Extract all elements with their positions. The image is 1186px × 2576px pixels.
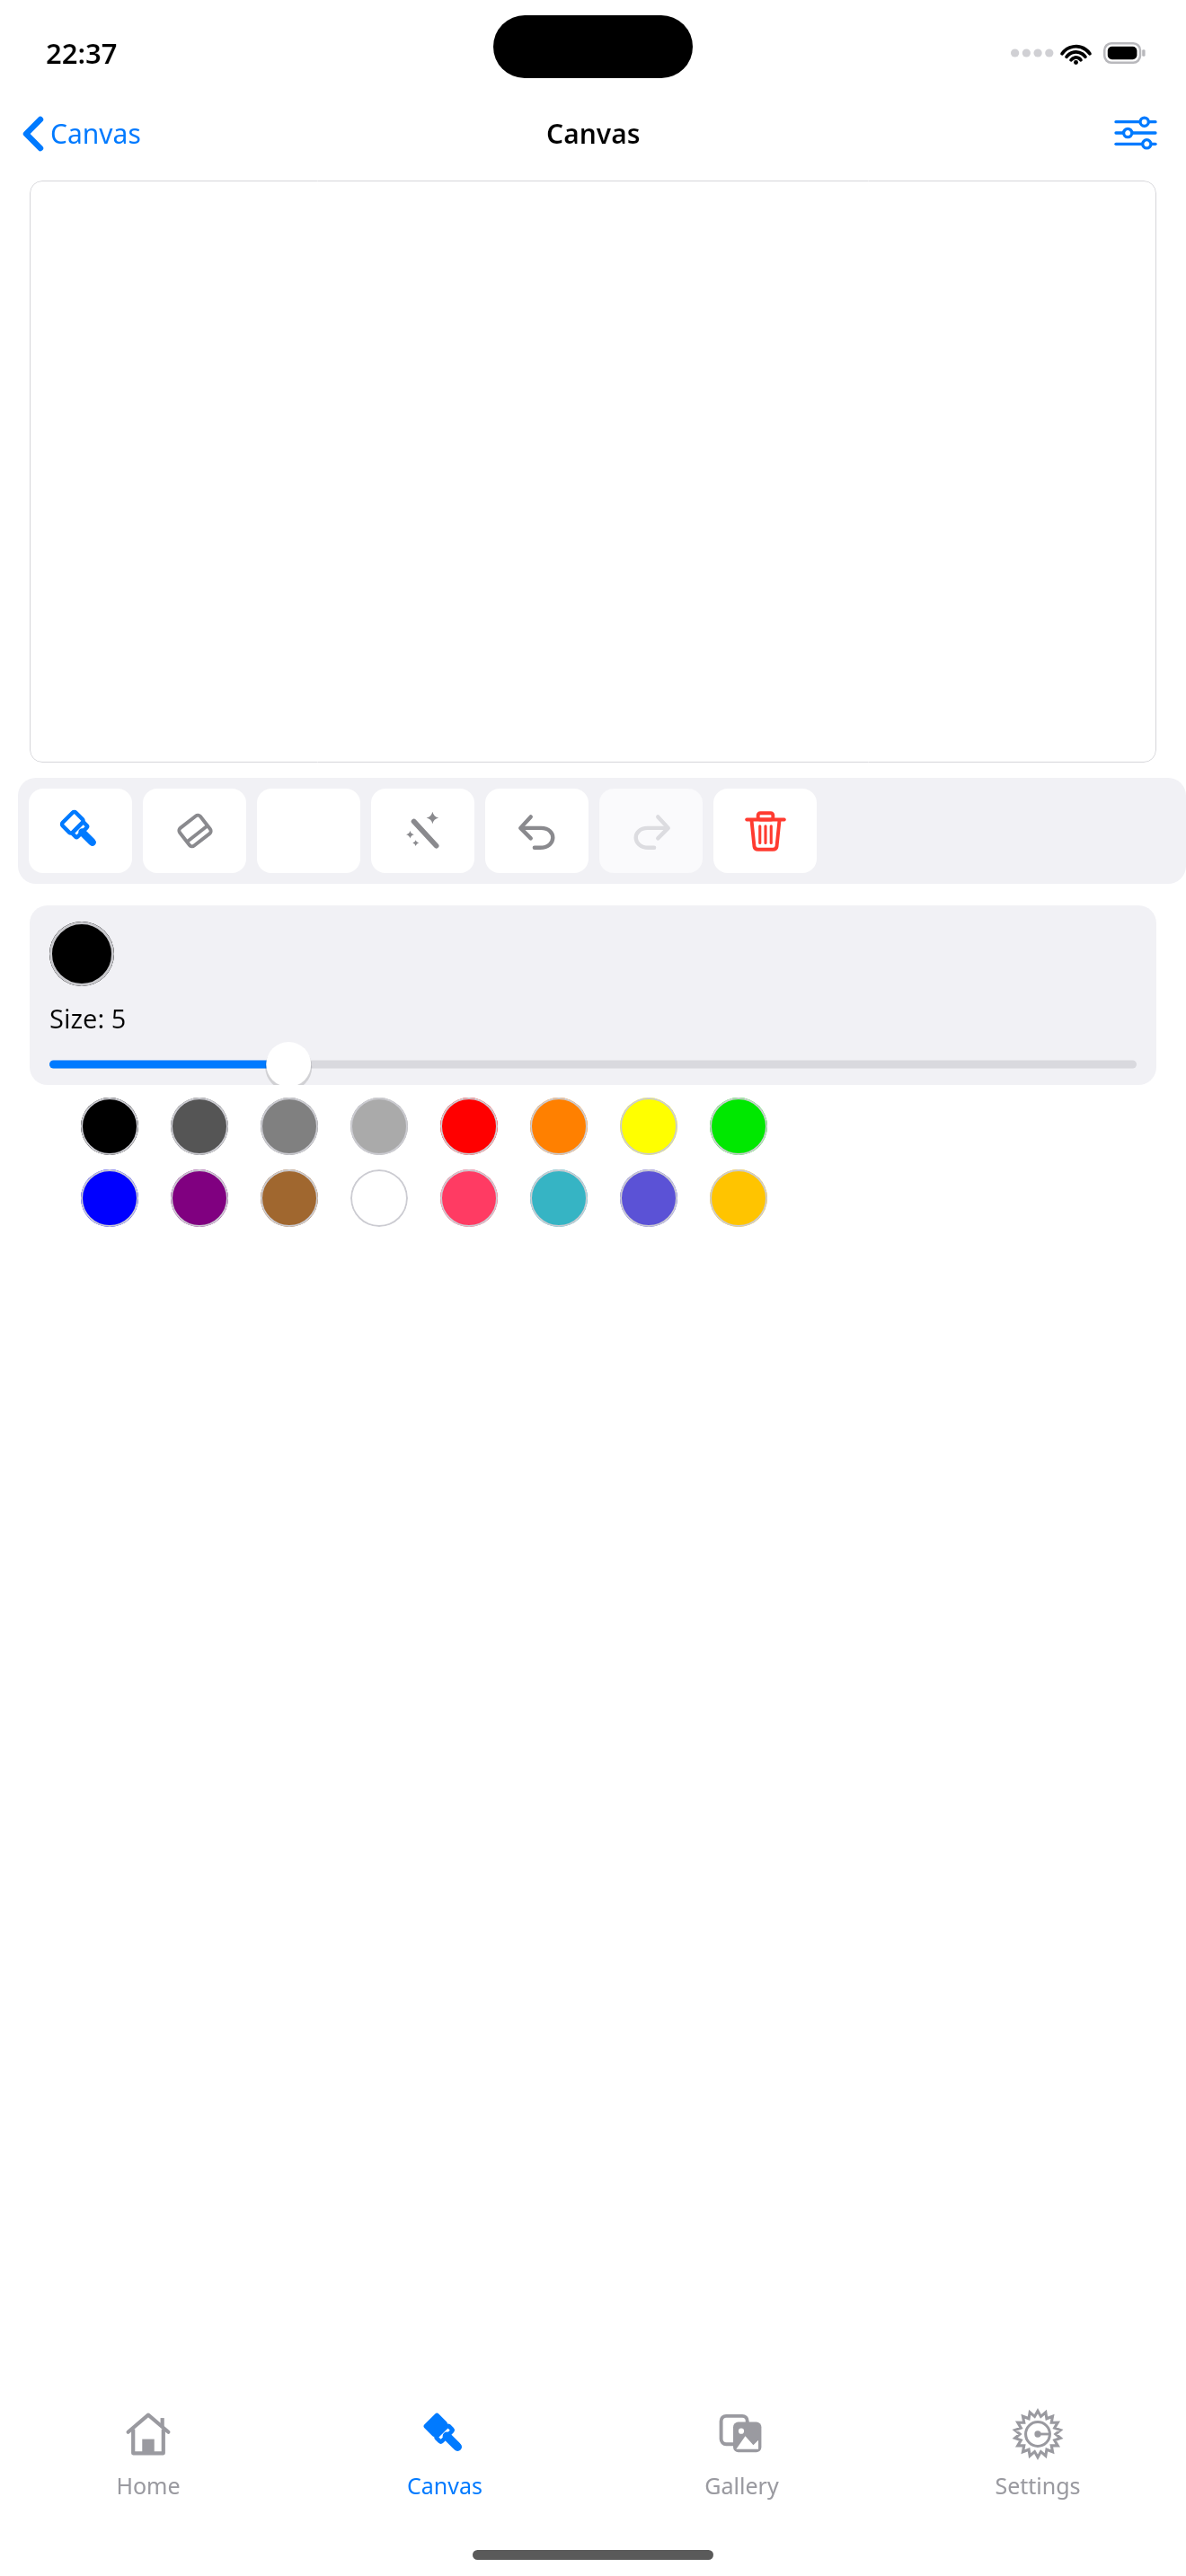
button[interactable]: Color swatch [81,1169,138,1227]
button[interactable]: Color swatch [171,1098,228,1155]
staticText: Canvas [407,2470,482,2501]
button[interactable]: Color swatch [171,1169,228,1227]
button[interactable]: Color swatch [440,1169,498,1227]
button[interactable]: Current color [49,922,114,986]
button[interactable]: Color swatch [620,1098,677,1155]
staticText: Gallery [704,2470,779,2501]
button[interactable]: Color swatch [350,1169,408,1227]
button[interactable]: Redo [599,789,703,873]
button[interactable]: Color swatch [261,1169,318,1227]
button[interactable]: Color swatch [81,1098,138,1155]
button[interactable]: Color swatch [261,1098,318,1155]
button[interactable]: Color swatch [710,1169,767,1227]
staticText: Settings [995,2470,1081,2501]
staticText: Home [116,2470,181,2501]
button[interactable]: Color swatch [710,1098,767,1155]
button[interactable]: Gallery [593,2389,889,2542]
button[interactable]: Settings [1109,106,1163,160]
button[interactable]: Settings [889,2389,1186,2542]
staticText: Size: 5 [49,1001,127,1036]
staticText: Canvas [50,115,141,152]
button[interactable]: Color swatch [530,1098,588,1155]
button[interactable]: Canvas [296,2389,593,2542]
button[interactable]: Brush [29,789,132,873]
button[interactable]: Color swatch [620,1169,677,1227]
button[interactable]: Canvas [16,110,148,157]
button[interactable]: Effects [371,789,474,873]
staticText: Canvas [546,115,641,152]
button[interactable]: Eraser [143,789,246,873]
button[interactable]: Undo [485,789,589,873]
button[interactable]: Color swatch [350,1098,408,1155]
button[interactable]: Brush size [49,1046,1137,1082]
button[interactable]: Clear [713,789,817,873]
button[interactable]: Home [0,2389,296,2542]
button[interactable]: Color swatch [530,1169,588,1227]
staticText: 22:37 [46,34,118,72]
button[interactable]: Color swatch [440,1098,498,1155]
